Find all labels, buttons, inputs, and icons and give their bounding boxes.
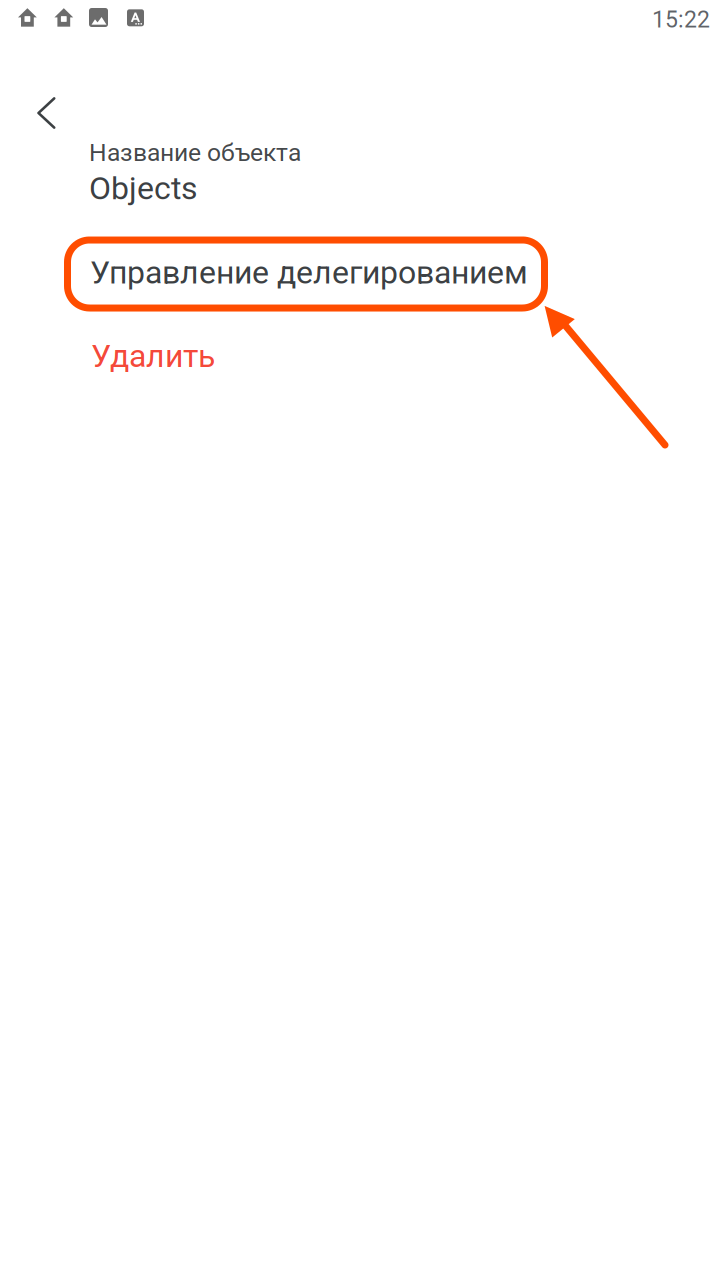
staticText: Objects <box>89 169 198 207</box>
button[interactable]: Удалить <box>0 328 720 384</box>
staticText: Название объекта <box>89 138 301 167</box>
staticText: Удалить <box>91 337 215 375</box>
staticText: Управление делегированием <box>90 254 528 291</box>
button[interactable]: Back <box>16 83 78 143</box>
button[interactable]: Управление делегированием <box>0 235 720 310</box>
staticText: 15:22 <box>652 6 710 33</box>
